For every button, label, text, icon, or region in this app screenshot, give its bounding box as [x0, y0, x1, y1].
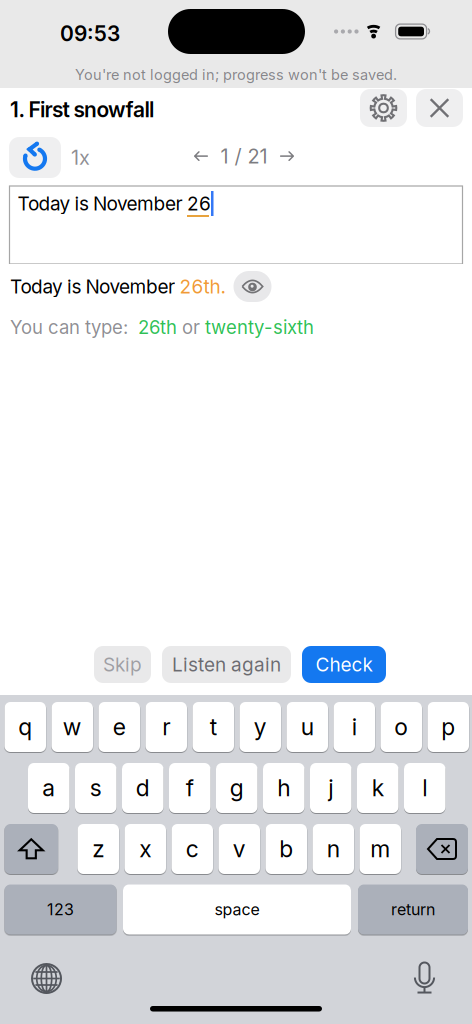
button[interactable]: Skip — [94, 646, 151, 683]
staticText: t — [210, 713, 217, 741]
button[interactable]: q — [4, 702, 46, 752]
button[interactable]: i — [333, 702, 375, 752]
staticText: f — [186, 774, 194, 802]
button[interactable]: Shift — [4, 824, 58, 874]
button[interactable]: Dictate — [414, 962, 435, 994]
button[interactable]: l — [404, 763, 445, 813]
staticText: 1 / 21 — [220, 144, 267, 168]
staticText: w — [63, 713, 82, 741]
button[interactable]: o — [380, 702, 422, 752]
button[interactable]: Close — [416, 89, 463, 127]
button[interactable]: Check — [302, 646, 386, 683]
staticText: You're not logged in; progress won't be … — [75, 66, 397, 83]
button[interactable]: c — [171, 824, 213, 874]
button[interactable]: Show answer — [233, 271, 271, 302]
staticText: u — [301, 713, 314, 741]
button[interactable]: Next keyboard — [32, 964, 61, 993]
button[interactable]: y — [239, 702, 281, 752]
staticText: m — [370, 835, 390, 863]
button[interactable]: p — [427, 702, 469, 752]
staticText: Today is November — [17, 192, 187, 215]
staticText: c — [186, 835, 199, 863]
staticText: Check — [315, 653, 372, 676]
staticText: l — [422, 774, 427, 802]
button[interactable]: g — [216, 763, 257, 813]
button[interactable]: Delete — [416, 824, 468, 874]
staticText: i — [352, 713, 357, 741]
button[interactable]: t — [192, 702, 234, 752]
staticText: b — [279, 835, 293, 863]
button[interactable]: r — [145, 702, 187, 752]
button[interactable]: j — [310, 763, 351, 813]
button[interactable]: n — [312, 824, 354, 874]
button[interactable]: 123 — [4, 884, 116, 934]
button[interactable]: f — [169, 763, 210, 813]
staticText: e — [113, 713, 126, 741]
staticText: 1. First snowfall — [10, 97, 154, 122]
staticText: Listen again — [172, 653, 281, 676]
staticText: q — [18, 713, 32, 741]
button[interactable]: Previous — [190, 146, 211, 167]
staticText: x — [139, 835, 151, 863]
button[interactable]: u — [286, 702, 328, 752]
staticText: 1x — [71, 145, 90, 170]
staticText: a — [42, 774, 55, 802]
button[interactable]: Replay audio — [9, 137, 61, 178]
staticText: 26th. — [179, 275, 225, 298]
staticText: j — [328, 774, 333, 802]
button[interactable]: d — [122, 763, 163, 813]
staticText: r — [162, 713, 170, 741]
staticText: space — [214, 900, 259, 919]
staticText: or — [177, 316, 205, 338]
button[interactable]: return — [358, 884, 468, 934]
staticText: z — [92, 835, 104, 863]
staticText: d — [136, 774, 150, 802]
button[interactable]: a — [28, 763, 69, 813]
button[interactable]: s — [75, 763, 116, 813]
staticText: p — [441, 713, 455, 741]
staticText: s — [90, 774, 102, 802]
staticText: h — [277, 774, 290, 802]
button[interactable]: v — [218, 824, 260, 874]
staticText: g — [230, 774, 244, 802]
button[interactable]: m — [359, 824, 401, 874]
staticText: 26th — [138, 316, 177, 338]
staticText: return — [391, 900, 435, 919]
staticText: y — [254, 713, 267, 741]
button[interactable]: Playback speed — [71, 145, 90, 170]
button[interactable]: e — [98, 702, 140, 752]
button[interactable]: w — [51, 702, 93, 752]
staticText: twenty-sixth — [205, 316, 314, 338]
staticText: Skip — [103, 653, 142, 676]
button[interactable]: Settings — [360, 89, 407, 127]
button[interactable]: k — [357, 763, 398, 813]
staticText: Today is November — [10, 275, 179, 298]
staticText: You can type: — [10, 316, 138, 338]
staticText: o — [394, 713, 408, 741]
button[interactable]: h — [263, 763, 304, 813]
button[interactable]: Listen again — [162, 646, 291, 683]
staticText: v — [233, 835, 246, 863]
staticText: k — [372, 774, 384, 802]
button[interactable]: b — [265, 824, 307, 874]
button[interactable]: z — [77, 824, 119, 874]
button[interactable]: x — [124, 824, 166, 874]
staticText: 123 — [47, 900, 74, 919]
staticText: n — [327, 835, 340, 863]
staticText: 09:53 — [60, 21, 120, 46]
button[interactable]: Next — [276, 146, 297, 167]
button[interactable]: space — [123, 884, 351, 934]
staticText: 26 — [187, 192, 211, 215]
